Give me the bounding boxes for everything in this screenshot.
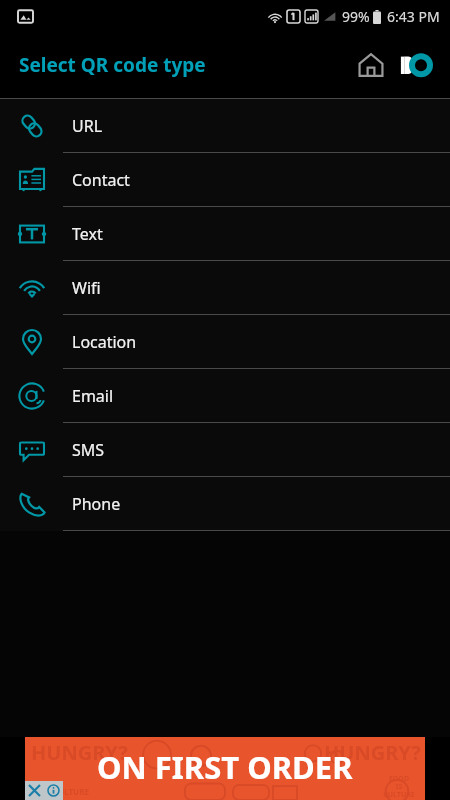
button[interactable]: Email — [0, 369, 450, 422]
button[interactable]: Text — [0, 207, 450, 260]
button[interactable]: Advertisement — [25, 737, 425, 800]
button[interactable]: Home — [350, 44, 392, 86]
staticText: HUNGRY? — [324, 739, 421, 766]
staticText: Phone — [72, 493, 121, 515]
button[interactable]: Ad info — [44, 781, 63, 800]
staticText: Contact — [72, 169, 130, 191]
staticText: SMS — [72, 439, 105, 461]
button[interactable]: URL — [0, 99, 450, 152]
staticText: Text — [72, 223, 103, 245]
button[interactable]: Wifi — [0, 261, 450, 314]
button[interactable]: Close ad — [25, 781, 44, 800]
button[interactable]: SMS — [0, 423, 450, 476]
staticText: Location — [72, 331, 137, 353]
staticText: 6:43 PM — [387, 7, 440, 26]
staticText: URL — [72, 115, 103, 137]
staticText: HUNGRY? — [31, 739, 128, 766]
button[interactable]: App logo — [394, 44, 436, 86]
staticText: CULTURE — [53, 786, 89, 797]
staticText: Select QR code type — [19, 52, 206, 78]
button[interactable]: Contact — [0, 153, 450, 206]
staticText: Email — [72, 385, 114, 407]
staticText: 99% — [342, 7, 370, 26]
staticText: ON FIRST ORDER — [97, 746, 353, 788]
button[interactable]: Phone — [0, 477, 450, 530]
staticText: FOOD IS CULTURE — [383, 774, 415, 799]
staticText: Wifi — [72, 277, 101, 299]
button[interactable]: Location — [0, 315, 450, 368]
